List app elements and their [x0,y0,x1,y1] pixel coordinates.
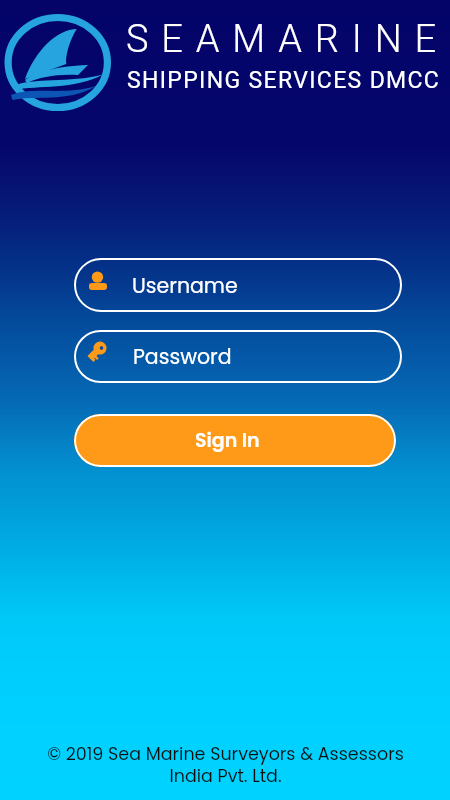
button[interactable]: Sign In [74,414,396,467]
staticText: © 2019 Sea Marine Surveyors & Assessors … [47,742,404,788]
button[interactable]: Username [74,258,402,312]
staticText: Password [133,342,232,371]
staticText: SHIPPING SERVICES DMCC [127,67,441,94]
staticText: SEAMARINE [126,17,449,62]
staticText: Sign In [195,427,260,454]
button[interactable]: Password [74,330,402,383]
staticText: Username [132,271,238,300]
